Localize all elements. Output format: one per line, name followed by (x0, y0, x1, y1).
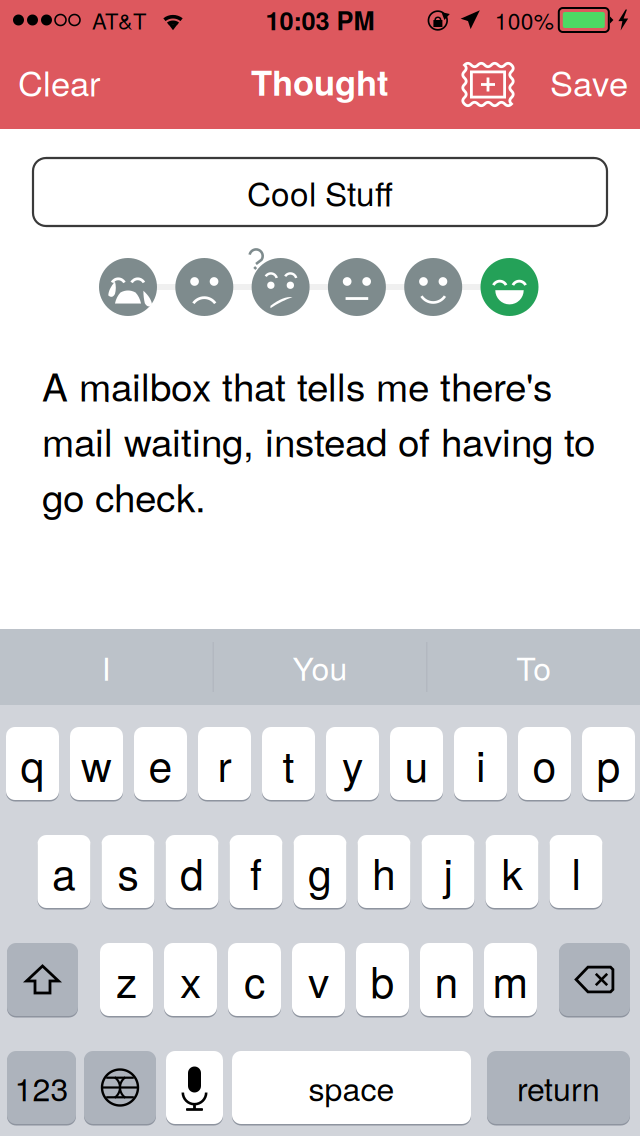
staticText: a (52, 841, 76, 902)
staticText: return (517, 1065, 600, 1110)
button[interactable]: I (0, 629, 213, 705)
button[interactable]: c (228, 942, 281, 1017)
button[interactable]: z (100, 942, 153, 1017)
staticText: To (516, 644, 551, 690)
staticText: Cool Stuff (247, 168, 393, 216)
button[interactable]: Very sad (99, 247, 157, 327)
staticText: o (532, 733, 556, 794)
button[interactable]: To (427, 629, 640, 705)
staticText: b (370, 949, 394, 1010)
staticText: m (492, 949, 528, 1010)
staticText: p (596, 733, 620, 794)
button[interactable]: p (582, 726, 635, 801)
button[interactable]: m (484, 942, 537, 1017)
button[interactable]: 123 (7, 1050, 76, 1125)
staticText: I (102, 644, 111, 690)
staticText: Thought (251, 57, 389, 106)
button[interactable]: Cool Stuff (33, 158, 607, 226)
button[interactable]: o (518, 726, 571, 801)
button[interactable]: Confused (252, 247, 310, 327)
button[interactable]: You (214, 629, 426, 705)
staticText: x (180, 949, 201, 1010)
button[interactable]: Sad (175, 247, 233, 327)
button[interactable]: u (390, 726, 443, 801)
staticText: h (372, 841, 396, 902)
button[interactable]: f (229, 834, 282, 909)
staticText: 10:03 PM (265, 2, 374, 38)
staticText: z (116, 949, 137, 1010)
button[interactable]: Delete (559, 942, 630, 1017)
staticText: u (404, 733, 428, 794)
button[interactable]: d (165, 834, 218, 909)
staticText: e (148, 733, 172, 794)
button[interactable]: b (356, 942, 409, 1017)
staticText: v (308, 949, 329, 1010)
staticText: y (342, 733, 363, 794)
staticText: f (250, 841, 262, 902)
button[interactable]: n (420, 942, 473, 1017)
button[interactable]: a (37, 834, 90, 909)
button[interactable]: Next keyboard (84, 1050, 156, 1125)
staticText: j (443, 841, 452, 902)
button[interactable]: g (293, 834, 346, 909)
button[interactable]: Dictation (166, 1050, 223, 1125)
button[interactable]: Clear (0, 54, 113, 114)
button[interactable]: v (292, 942, 345, 1017)
button[interactable]: t (262, 726, 315, 801)
staticText: n (434, 949, 458, 1010)
staticText: 123 (14, 1065, 68, 1110)
button[interactable]: h (357, 834, 410, 909)
staticText: space (308, 1065, 394, 1110)
staticText: Clear (18, 57, 101, 106)
staticText: q (20, 733, 44, 794)
button[interactable]: Add photo (460, 59, 516, 109)
button[interactable]: return (487, 1050, 630, 1125)
staticText: r (217, 733, 231, 794)
staticText: AT&T (92, 4, 146, 36)
button[interactable]: Happy (404, 247, 462, 327)
button[interactable]: y (326, 726, 379, 801)
button[interactable]: Save (516, 54, 640, 114)
button[interactable]: i (454, 726, 507, 801)
button[interactable]: q (6, 726, 59, 801)
button[interactable]: k (485, 834, 538, 909)
button[interactable]: Very happy, selected (480, 247, 538, 327)
staticText: You (292, 644, 347, 690)
staticText: i (476, 733, 485, 794)
staticText: w (81, 733, 112, 794)
staticText: d (180, 841, 204, 902)
button[interactable]: space (232, 1050, 471, 1125)
staticText: A mailbox that tells me there's mail wai… (42, 357, 595, 523)
button[interactable]: Shift (7, 942, 78, 1017)
staticText: c (244, 949, 265, 1010)
staticText: t (282, 733, 294, 794)
button[interactable]: l (549, 834, 602, 909)
staticText: l (571, 841, 580, 902)
button[interactable]: j (421, 834, 474, 909)
button[interactable]: w (70, 726, 123, 801)
button[interactable]: s (101, 834, 154, 909)
button[interactable]: r (198, 726, 251, 801)
staticText: g (308, 841, 332, 902)
staticText: Save (550, 57, 628, 106)
button[interactable]: e (134, 726, 187, 801)
staticText: 100% (495, 4, 554, 36)
button[interactable]: Neutral (328, 247, 386, 327)
staticText: k (501, 841, 522, 902)
button[interactable]: x (164, 942, 217, 1017)
staticText: s (117, 841, 138, 902)
